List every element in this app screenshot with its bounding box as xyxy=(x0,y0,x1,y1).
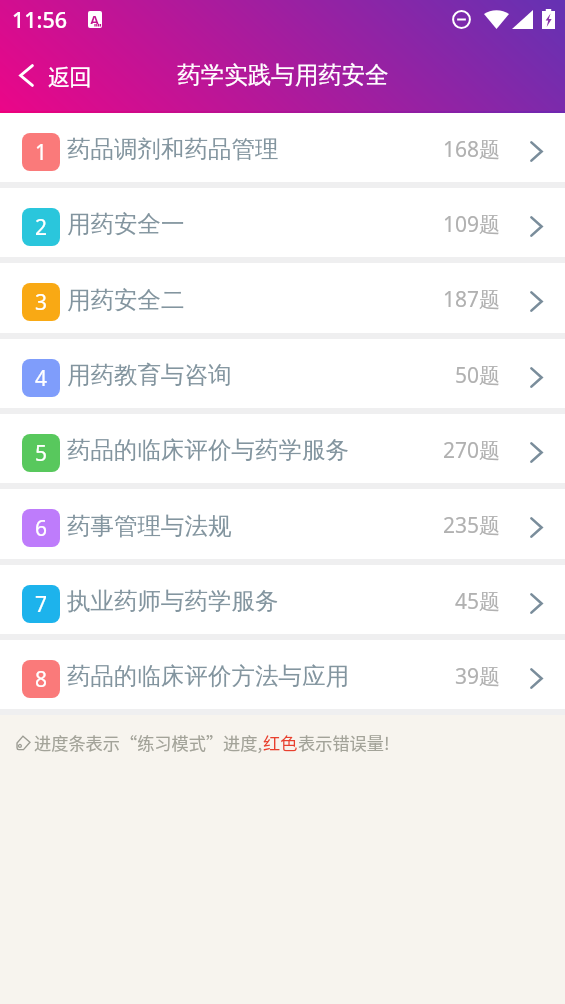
staticText: 用药教育与咨询 xyxy=(67,360,232,390)
staticText: 2 xyxy=(35,213,48,242)
staticText: 6 xyxy=(35,514,48,543)
staticText: 7 xyxy=(35,590,48,619)
staticText: 表示错误量! xyxy=(298,730,390,755)
staticText: 用药安全二 xyxy=(67,285,185,315)
button[interactable]: 2 xyxy=(0,188,565,257)
staticText: 45题 xyxy=(455,587,501,616)
staticText: 11:56 xyxy=(12,5,68,34)
button[interactable]: 8 xyxy=(0,640,565,709)
button[interactable]: 5 xyxy=(0,414,565,483)
staticText: 39题 xyxy=(455,662,501,691)
staticText: 109题 xyxy=(443,210,501,239)
staticText: 药品调剂和药品管理 xyxy=(67,134,279,164)
staticText: 5 xyxy=(35,439,48,468)
staticText: 药事管理与法规 xyxy=(67,511,232,541)
staticText: 药品的临床评价方法与应用 xyxy=(67,661,349,691)
button[interactable]: 4 xyxy=(0,339,565,408)
staticText: 3 xyxy=(35,288,48,317)
staticText: 187题 xyxy=(443,285,501,314)
button[interactable]: 返回 xyxy=(0,38,106,112)
staticText: 用药安全一 xyxy=(67,209,185,239)
button[interactable]: 1 xyxy=(0,113,565,182)
staticText: 1 xyxy=(35,138,48,167)
button[interactable]: 6 xyxy=(0,489,565,559)
staticText: A xyxy=(90,11,99,24)
staticText: 药学实践与用药安全 xyxy=(177,60,389,90)
staticText: 168题 xyxy=(443,135,501,164)
staticText: 4 xyxy=(35,364,48,393)
staticText: 8 xyxy=(35,665,48,694)
staticText: 270题 xyxy=(443,436,501,465)
staticText: 返回 xyxy=(48,60,92,91)
staticText: 进度条表示“练习模式”进度, xyxy=(34,730,263,755)
staticText: 50题 xyxy=(455,361,501,390)
button[interactable]: 3 xyxy=(0,263,565,333)
button[interactable]: 7 xyxy=(0,565,565,634)
staticText: 235题 xyxy=(443,511,501,540)
staticText: 药品的临床评价与药学服务 xyxy=(67,435,349,465)
staticText: 执业药师与药学服务 xyxy=(67,586,279,616)
staticText: 红色 xyxy=(263,730,298,755)
